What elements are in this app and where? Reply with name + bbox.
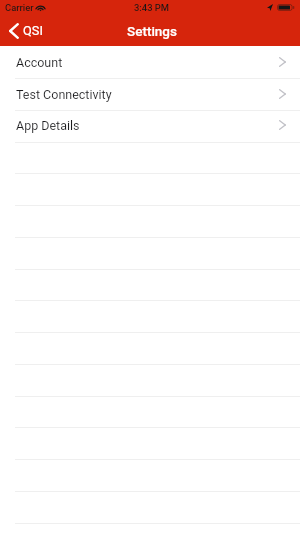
staticText: QSI (23, 23, 43, 38)
other: Back (9, 23, 19, 39)
button[interactable]: App Details (0, 109, 300, 141)
staticText: App Details (16, 118, 80, 133)
staticText: Settings (127, 23, 177, 39)
staticText: 3:43 PM (134, 2, 170, 13)
staticText: Carrier (5, 2, 34, 13)
staticText: Account (16, 55, 63, 70)
staticText: Test Connectivity (16, 87, 112, 102)
button[interactable]: Test Connectivity (0, 78, 300, 110)
button[interactable]: Back (0, 18, 51, 44)
button[interactable]: Account (0, 46, 300, 78)
